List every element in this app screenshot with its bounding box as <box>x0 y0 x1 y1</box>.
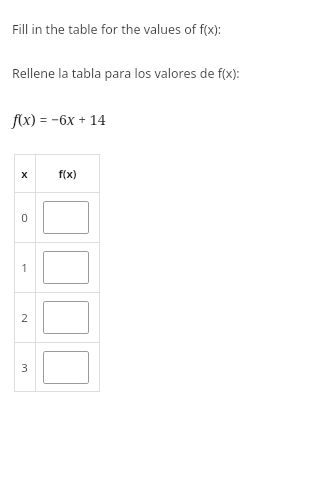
button[interactable]: Answer for x equals 0 <box>43 201 89 234</box>
button[interactable]: Answer for x equals 1 <box>43 251 89 284</box>
button[interactable]: Answer for x equals 3 <box>43 351 89 384</box>
staticText: 0 <box>21 210 28 226</box>
staticText: x <box>21 166 28 181</box>
staticText: 2 <box>21 310 28 326</box>
staticText: 3 <box>21 360 28 376</box>
staticText: f(x) <box>58 166 77 181</box>
button[interactable]: Answer for x equals 2 <box>43 301 89 334</box>
staticText: 1 <box>21 260 28 276</box>
staticText: Fill in the table for the values of f(x)… <box>12 21 222 38</box>
staticText: f(x) = −6x + 14 <box>13 110 106 129</box>
staticText: Rellene la tabla para los valores de f(x… <box>12 65 240 82</box>
